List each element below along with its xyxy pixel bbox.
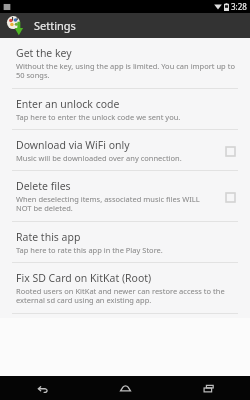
button[interactable]: Delete files — [0, 171, 250, 221]
staticText: Tap here to rate this app in the Play St… — [16, 245, 163, 255]
button[interactable]: Fix SD Card on KitKat (Root) — [0, 263, 250, 313]
button[interactable]: Enter an unlock code — [0, 89, 250, 129]
button[interactable]: Rate this app — [0, 222, 250, 262]
staticText: Get the key — [16, 46, 72, 60]
staticText: Delete files — [16, 179, 71, 193]
staticText: Music will be downloaded over any connec… — [16, 153, 182, 163]
button[interactable]: Recent apps — [167, 376, 250, 400]
button[interactable]: Download via WiFi only — [0, 130, 250, 170]
staticText: Fix SD Card on KitKat (Root) — [16, 271, 152, 285]
staticText: Rate this app — [16, 230, 81, 244]
staticText: Without the key, using the app is limite… — [16, 61, 240, 81]
button[interactable]: Toggle Download via WiFi only — [220, 141, 240, 161]
staticText: Tap here to enter the unlock code we sen… — [16, 112, 181, 122]
button[interactable]: Home — [84, 376, 167, 400]
staticText: Settings — [34, 18, 76, 33]
button[interactable]: Toggle Delete files — [220, 187, 240, 207]
button[interactable]: Get the key — [0, 38, 250, 88]
staticText: 3:28 — [231, 1, 247, 12]
staticText: When deselecting items, associated music… — [16, 194, 214, 214]
staticText: Download via WiFi only — [16, 138, 130, 152]
staticText: Rooted users on KitKat and newer can res… — [16, 286, 240, 306]
button[interactable]: Back — [0, 376, 84, 400]
staticText: Enter an unlock code — [16, 97, 120, 111]
